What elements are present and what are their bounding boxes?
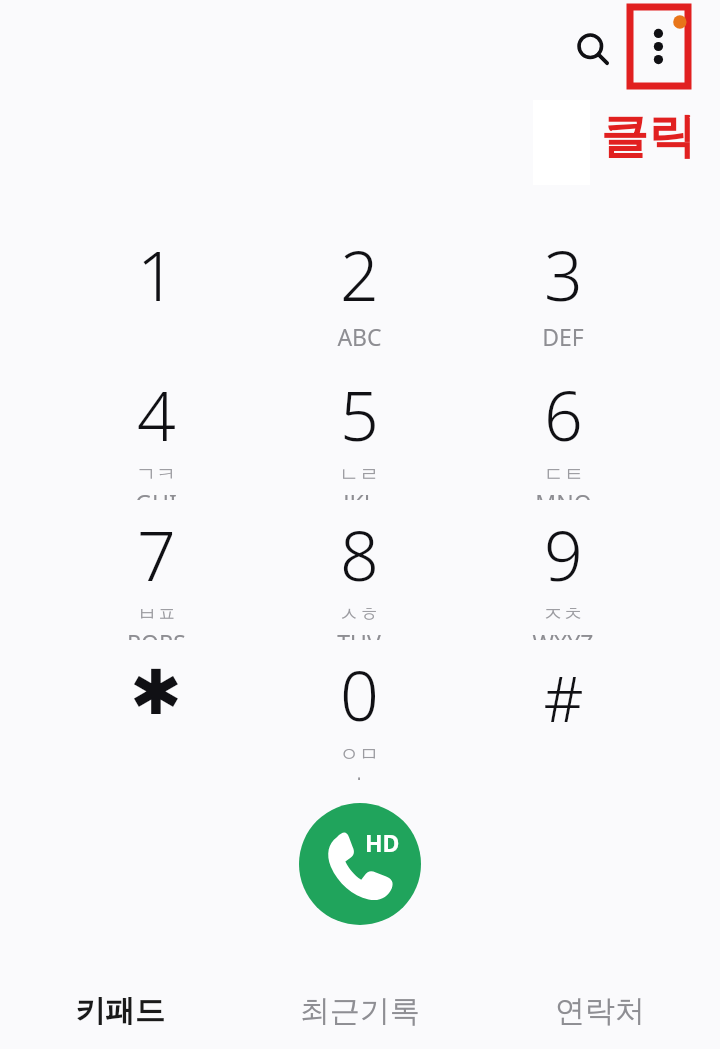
button[interactable]: 6 — [478, 368, 648, 500]
staticText: 0 — [340, 648, 379, 741]
staticText: ㅇㅁ — [339, 742, 379, 767]
staticText: 9 — [544, 508, 583, 601]
staticText: DEF — [542, 321, 584, 352]
button[interactable]: 0 — [274, 648, 444, 780]
staticText: 2 — [340, 228, 379, 321]
staticText: 연락처 — [555, 992, 645, 1030]
button[interactable]: # — [478, 656, 648, 788]
staticText: ㄷㅌ — [544, 462, 584, 487]
staticText: ㅂㅍ — [137, 602, 177, 627]
staticText: ㅈㅊ — [543, 602, 583, 627]
staticText: ABC — [337, 321, 382, 352]
staticText: 클릭 — [601, 107, 695, 166]
button[interactable]: 9 — [478, 508, 648, 640]
staticText: 8 — [340, 508, 379, 601]
button[interactable]: Search — [563, 19, 623, 79]
staticText: PQRS — [127, 627, 186, 640]
staticText: 7 — [137, 508, 176, 601]
staticText: JKL — [343, 487, 376, 500]
button[interactable]: 8 — [274, 508, 444, 640]
staticText: TUV — [337, 627, 381, 640]
button[interactable]: 연락처 — [480, 973, 720, 1049]
button[interactable]: 1 — [71, 228, 241, 360]
staticText: ✱ — [130, 656, 182, 728]
staticText: 1 — [137, 228, 176, 321]
staticText: 5 — [340, 368, 379, 461]
staticText: 6 — [544, 368, 583, 461]
button[interactable]: 7 — [71, 508, 241, 640]
button[interactable]: 4 — [71, 368, 241, 500]
staticText: MNO — [535, 487, 592, 500]
staticText: 키패드 — [75, 992, 165, 1030]
button[interactable]: 5 — [274, 368, 444, 500]
staticText: + — [352, 767, 366, 780]
button[interactable]: 최근기록 — [240, 973, 480, 1049]
staticText: 4 — [137, 368, 176, 461]
staticText: GHI — [135, 487, 177, 500]
staticText: 3 — [544, 228, 583, 321]
staticText: 최근기록 — [300, 992, 420, 1030]
staticText: ㅅㅎ — [339, 602, 379, 627]
button[interactable]: 3 — [478, 228, 648, 360]
staticText: ㄱㅋ — [136, 462, 176, 487]
staticText: # — [543, 656, 584, 740]
button[interactable]: More options — [630, 7, 688, 86]
staticText: WXYZ — [532, 627, 594, 640]
staticText: HD — [365, 827, 400, 858]
button[interactable]: Call — [299, 803, 421, 925]
staticText: ㄴㄹ — [339, 462, 379, 487]
button[interactable]: 키패드 — [0, 973, 240, 1049]
button[interactable]: 2 — [274, 228, 444, 360]
button[interactable]: ✱ — [71, 656, 241, 788]
